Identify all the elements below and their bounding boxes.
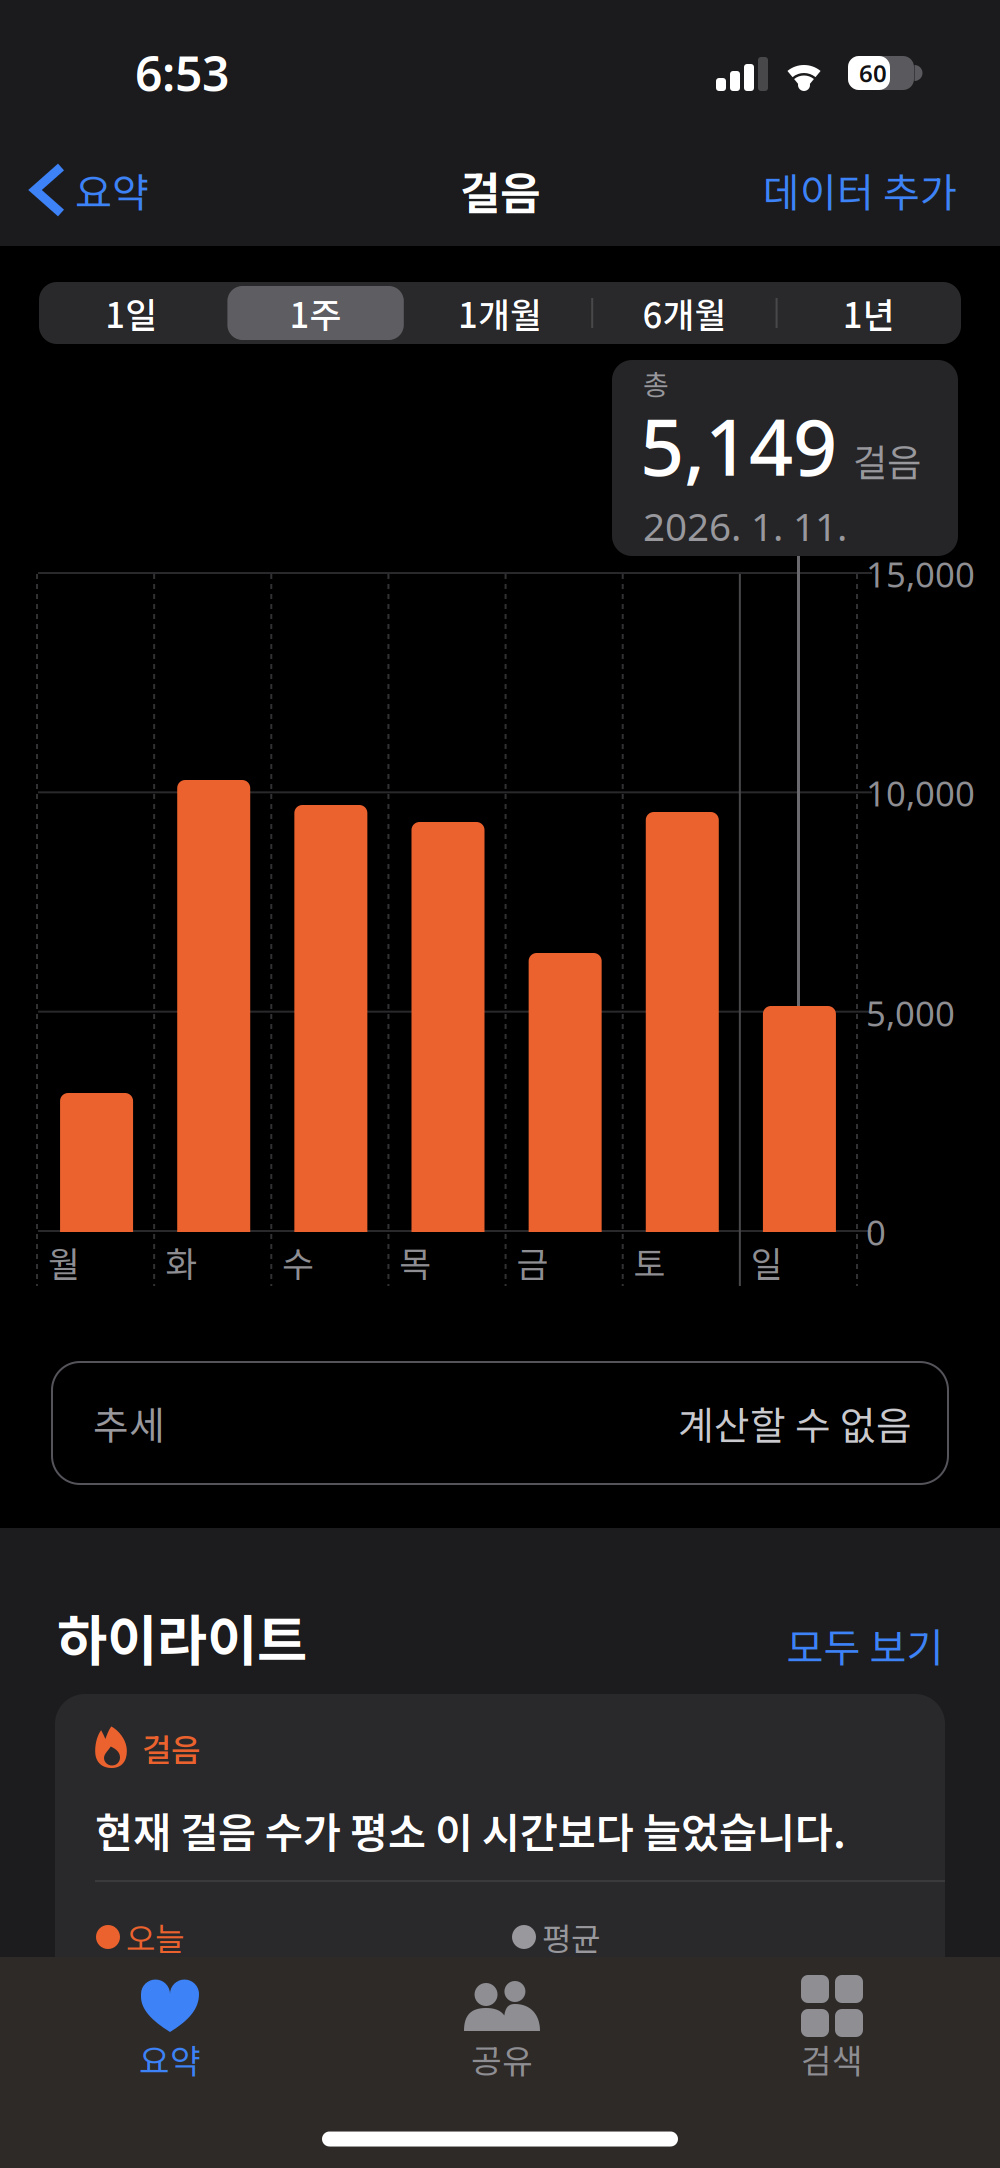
staticText: 5,000 [866, 990, 955, 1036]
button[interactable]: 1일 [43, 286, 219, 340]
button[interactable]: 모두 보기 [786, 1616, 943, 1674]
staticText: 걸음 [853, 433, 921, 487]
staticText: 5,149 [640, 394, 837, 497]
staticText: 목 [399, 1237, 431, 1287]
staticText: 걸음 [460, 158, 540, 222]
staticText: 일 [751, 1237, 783, 1287]
staticText: 15,000 [866, 551, 975, 597]
staticText: 금 [517, 1237, 549, 1287]
button[interactable]: 요약 [70, 1975, 270, 2081]
staticText: 현재 걸음 수가 평소 이 시간보다 늘었습니다. [95, 1800, 846, 1860]
staticText: 모두 보기 [786, 1616, 943, 1674]
staticText: 0 [866, 1209, 886, 1255]
button[interactable]: 걸음 하이라이트 [55, 1694, 945, 2168]
staticText: 1일 [105, 288, 157, 338]
staticText: 요약 [139, 2035, 201, 2083]
staticText: 60 [859, 57, 887, 89]
button[interactable]: 추세 [52, 1362, 948, 1484]
staticText: 수 [282, 1237, 314, 1287]
button[interactable]: 요약 [35, 161, 149, 219]
staticText: 10,000 [866, 770, 975, 816]
button[interactable]: 공유 [402, 1975, 602, 2081]
staticText: 6개월 [642, 288, 726, 338]
staticText: 1주 [290, 288, 342, 338]
button[interactable]: 6개월 [596, 286, 773, 340]
staticText: 데이터 추가 [763, 161, 957, 219]
staticText: 오늘 [126, 1914, 184, 1960]
staticText: 1년 [843, 288, 895, 338]
button[interactable]: 1주 [227, 286, 404, 340]
staticText: 월 [48, 1237, 80, 1287]
button[interactable]: 데이터 추가 [637, 161, 957, 219]
staticText: 2026. 1. 11. [643, 500, 847, 552]
button[interactable]: 1개월 [412, 286, 588, 340]
button[interactable]: 검색 [732, 1975, 932, 2081]
staticText: 화 [165, 1237, 197, 1287]
staticText: 평균 [542, 1914, 600, 1960]
staticText: 요약 [75, 161, 149, 219]
staticText: 총 [643, 363, 669, 403]
staticText: 토 [634, 1237, 666, 1287]
staticText: 검색 [801, 2035, 863, 2083]
staticText: 계산할 수 없음 [678, 1395, 912, 1451]
staticText: 걸음 [142, 1725, 200, 1771]
staticText: 공유 [471, 2035, 533, 2083]
button[interactable]: 1년 [781, 286, 957, 340]
staticText: 추세 [93, 1395, 165, 1451]
staticText: 하이라이트 [57, 1597, 307, 1677]
staticText: 6:53 [135, 41, 229, 105]
staticText: 1개월 [458, 288, 542, 338]
